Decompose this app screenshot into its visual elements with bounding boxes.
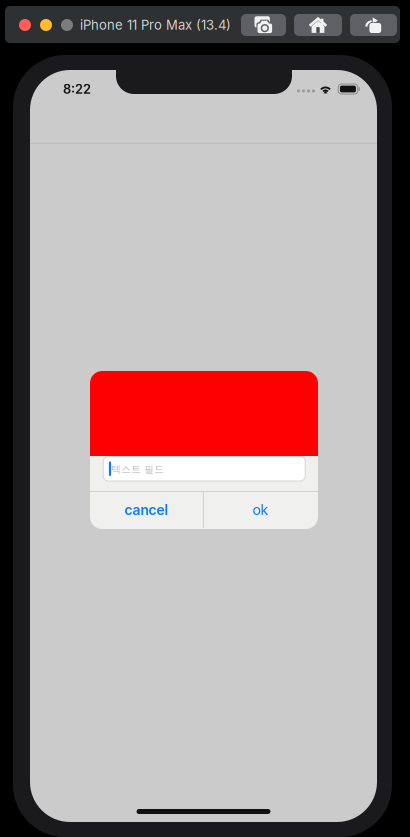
button[interactable]: Screenshot (241, 14, 286, 36)
button[interactable]: cancel (90, 492, 203, 528)
staticText: 텍스트 필드 (111, 463, 164, 475)
button[interactable]: Home (294, 14, 342, 36)
button[interactable]: ok (204, 492, 317, 528)
staticText: 8:22 (63, 81, 91, 97)
button[interactable]: Share (350, 14, 397, 36)
staticText: iPhone 11 Pro Max (13.4) (80, 17, 231, 33)
staticText: cancel (124, 501, 168, 518)
staticText: ok (252, 501, 268, 518)
